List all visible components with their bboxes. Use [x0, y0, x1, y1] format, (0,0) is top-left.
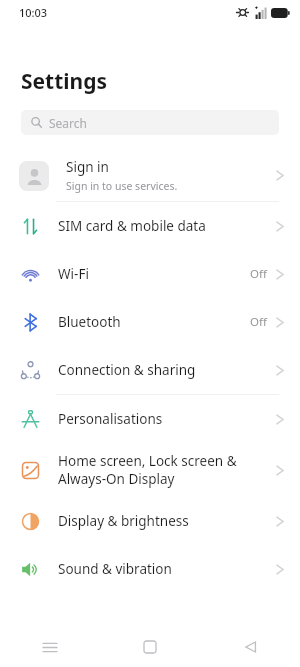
- button[interactable]: Sound & vibration: [0, 545, 300, 593]
- staticText: Sign in to use services.: [66, 179, 178, 193]
- staticText: Off: [250, 314, 267, 330]
- button[interactable]: Display & brightness: [0, 497, 300, 545]
- button[interactable]: Home: [100, 627, 200, 667]
- staticText: Wi-Fi: [58, 265, 250, 283]
- staticText: SIM card & mobile data: [58, 217, 276, 235]
- staticText: Off: [250, 266, 267, 282]
- button[interactable]: Search: [21, 110, 279, 135]
- staticText: Home screen, Lock screen & Always-On Dis…: [58, 452, 276, 488]
- staticText: Sound & vibration: [58, 560, 276, 578]
- button[interactable]: SIM card & mobile data: [0, 202, 300, 250]
- button[interactable]: Recent apps: [0, 627, 100, 667]
- button[interactable]: Home screen, Lock screen & Always-On Dis…: [0, 443, 300, 497]
- button[interactable]: Back: [200, 627, 300, 667]
- button[interactable]: Wi-Fi: [0, 250, 300, 298]
- button[interactable]: Connection & sharing: [0, 346, 300, 394]
- staticText: Sign in: [66, 158, 109, 176]
- staticText: Personalisations: [58, 410, 276, 428]
- button[interactable]: Sign in: [0, 150, 300, 201]
- staticText: Connection & sharing: [58, 361, 276, 379]
- button[interactable]: Personalisations: [0, 395, 300, 443]
- staticText: Search: [49, 115, 87, 131]
- button[interactable]: Bluetooth: [0, 298, 300, 346]
- staticText: Bluetooth: [58, 313, 250, 331]
- staticText: 10:03: [19, 5, 48, 20]
- staticText: Settings: [21, 67, 108, 96]
- staticText: Display & brightness: [58, 512, 276, 530]
